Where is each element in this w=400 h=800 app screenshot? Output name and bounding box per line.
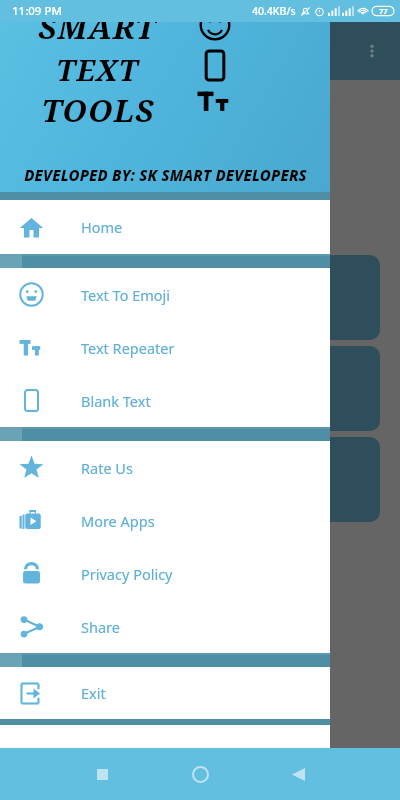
button[interactable]: Back bbox=[276, 752, 320, 796]
button[interactable]: Rate Us bbox=[0, 441, 330, 494]
staticText: TOOLS bbox=[41, 89, 155, 131]
button[interactable]: Privacy Policy bbox=[0, 547, 330, 600]
button[interactable]: More options bbox=[358, 37, 386, 65]
button[interactable]: More Apps bbox=[0, 494, 330, 547]
staticText: Share bbox=[81, 617, 120, 637]
staticText: Exit bbox=[81, 683, 106, 703]
staticText: Blank Text bbox=[81, 391, 151, 411]
staticText: Text To Emoji bbox=[81, 285, 171, 305]
button[interactable]: Home bbox=[178, 752, 222, 796]
button[interactable]: Text Repeater bbox=[0, 321, 330, 374]
staticText: 77 bbox=[379, 6, 388, 16]
staticText: DEVELOPED BY: SK SMART DEVELOPERS bbox=[24, 165, 307, 185]
button[interactable]: Text To Emoji bbox=[0, 268, 330, 321]
button[interactable]: Recents bbox=[80, 752, 124, 796]
button[interactable] bbox=[80, 437, 380, 522]
staticText: Home bbox=[81, 217, 123, 237]
button[interactable]: Blank Text bbox=[0, 374, 330, 427]
staticText: 11:09 PM bbox=[12, 3, 63, 19]
staticText: Privacy Policy bbox=[81, 564, 173, 584]
button[interactable]: Exit bbox=[0, 667, 330, 719]
staticText: More Apps bbox=[81, 511, 155, 531]
button[interactable] bbox=[80, 255, 380, 340]
staticText: TEXT bbox=[56, 50, 139, 89]
staticText: 40.4KB/s bbox=[252, 4, 296, 18]
button[interactable]: Home bbox=[0, 200, 330, 254]
button[interactable]: Share bbox=[0, 600, 330, 653]
staticText: SMART bbox=[38, 6, 157, 48]
staticText: Text Repeater bbox=[81, 338, 175, 358]
staticText: Rate Us bbox=[81, 458, 133, 478]
button[interactable] bbox=[80, 346, 380, 431]
